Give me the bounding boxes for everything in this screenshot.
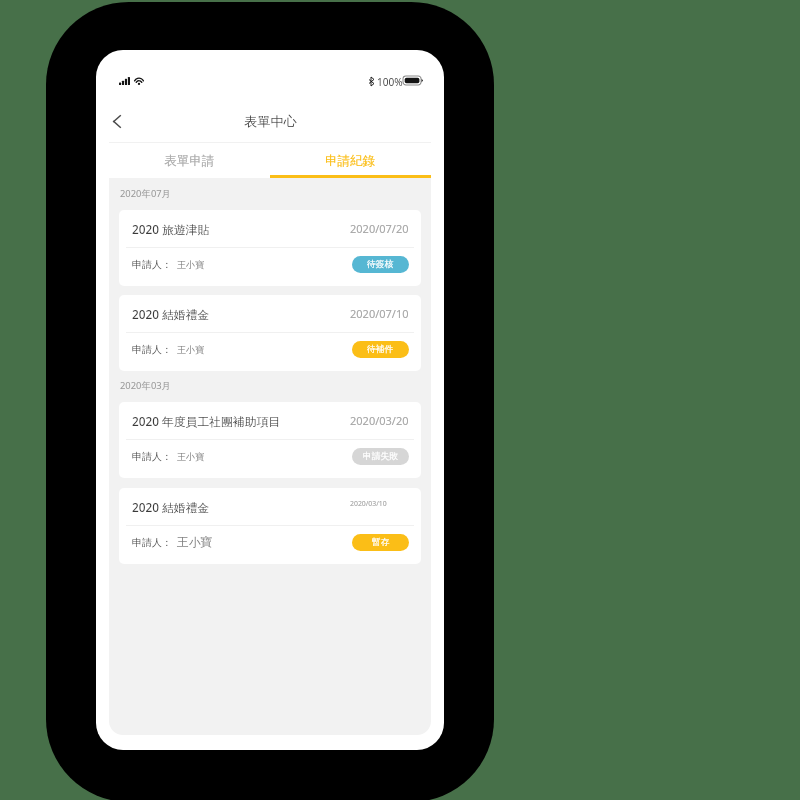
button[interactable]: 待簽核 [352,256,409,273]
button[interactable]: 暫存 [352,534,409,551]
staticText: 2020 結婚禮金 [132,306,210,322]
staticText: 申請人： [132,450,172,463]
button[interactable]: 2020 結婚禮金 [119,295,421,371]
staticText: 申請人： [132,343,172,356]
button[interactable]: 2020 結婚禮金 [119,488,421,564]
staticText: 王小寶 [177,259,205,270]
staticText: 2020 旅遊津貼 [132,221,210,237]
button[interactable]: 2020 年度員工社團補助項目 [119,402,421,478]
staticText: 2020/03/10 [350,499,387,508]
staticText: 100% [377,75,403,89]
button[interactable]: 申請失敗 [352,448,409,465]
staticText: 申請紀錄 [325,153,376,169]
staticText: 申請人： [132,258,172,271]
staticText: 2020 結婚禮金 [132,499,210,515]
button[interactable]: 表單申請 [109,143,270,178]
staticText: 王小寶 [177,451,205,462]
staticText: 申請失敗 [363,451,399,462]
staticText: 表單申請 [164,153,215,169]
staticText: 表單中心 [244,113,297,130]
staticText: 王小寶 [177,344,205,355]
button[interactable]: 待補件 [352,341,409,358]
staticText: 2020/07/10 [350,306,409,321]
staticText: 申請人： [132,536,172,549]
staticText: 2020年03月 [120,379,172,392]
staticText: 王小寶 [177,535,213,550]
staticText: 2020/07/20 [350,221,409,236]
staticText: 2020年07月 [120,187,172,200]
button[interactable]: 2020 旅遊津貼 [119,210,421,286]
button[interactable]: Back [109,100,140,143]
button[interactable]: 申請紀錄 [270,143,431,178]
staticText: 暫存 [372,537,390,548]
staticText: 待簽核 [367,259,394,270]
staticText: 待補件 [367,344,394,355]
staticText: 2020 年度員工社團補助項目 [132,413,281,429]
staticText: 2020/03/20 [350,413,409,428]
